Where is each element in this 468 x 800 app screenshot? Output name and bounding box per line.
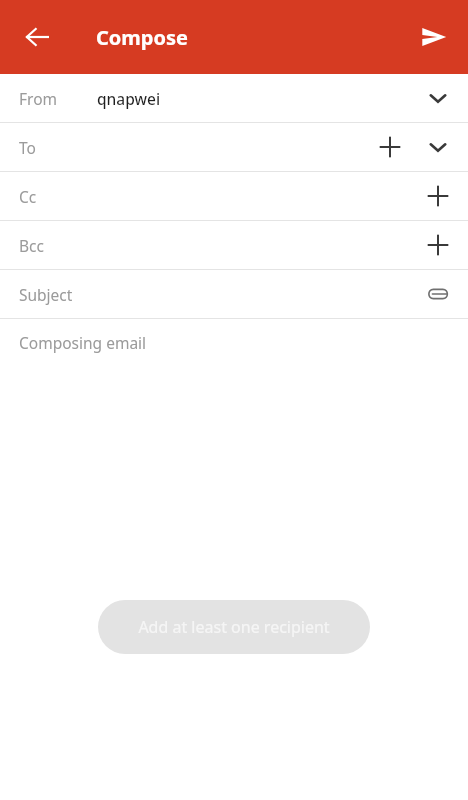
button[interactable]: Bcc bbox=[0, 221, 468, 269]
staticText: To bbox=[19, 137, 36, 158]
staticText: Add at least one recipient bbox=[138, 616, 330, 638]
button[interactable]: From bbox=[0, 74, 468, 122]
button[interactable]: Expand bbox=[414, 123, 462, 171]
staticText: qnapwei bbox=[97, 88, 161, 109]
button[interactable]: Composing email bbox=[0, 319, 468, 365]
button[interactable]: Send bbox=[408, 11, 460, 63]
button[interactable]: Add recipient bbox=[414, 221, 462, 269]
staticText: From bbox=[19, 88, 58, 109]
staticText: Subject bbox=[19, 284, 73, 305]
button[interactable]: Subject bbox=[0, 270, 468, 318]
button[interactable]: Attach file bbox=[414, 270, 462, 318]
button[interactable]: Add recipient bbox=[414, 172, 462, 220]
staticText: Cc bbox=[19, 186, 37, 207]
staticText: Compose bbox=[96, 24, 188, 51]
button[interactable]: Add recipient bbox=[366, 123, 414, 171]
button[interactable]: Expand bbox=[414, 74, 462, 122]
button[interactable]: Add at least one recipient bbox=[98, 600, 370, 654]
staticText: Composing email bbox=[19, 332, 147, 353]
button[interactable]: To bbox=[0, 123, 468, 171]
button[interactable]: Back bbox=[11, 11, 63, 63]
staticText: Bcc bbox=[19, 235, 44, 256]
button[interactable]: Cc bbox=[0, 172, 468, 220]
